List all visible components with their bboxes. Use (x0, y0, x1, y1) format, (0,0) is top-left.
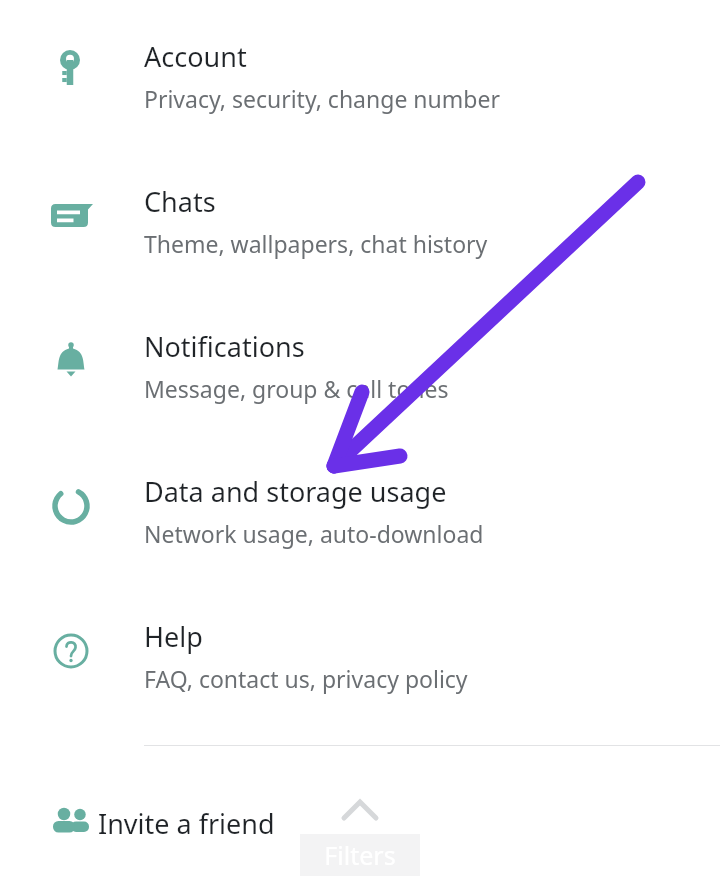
button[interactable]: Chats (0, 177, 720, 287)
staticText: Account (144, 38, 247, 75)
staticText: Chats (144, 183, 216, 220)
staticText: Message, group & call tones (144, 373, 449, 404)
button[interactable]: Notifications (0, 322, 720, 432)
staticText: Data and storage usage (144, 473, 447, 510)
staticText: Privacy, security, change number (144, 83, 500, 114)
staticText: Notifications (144, 328, 305, 365)
button[interactable]: Collapse (340, 788, 380, 828)
staticText: Invite a friend (98, 805, 275, 842)
button[interactable]: Account (0, 32, 720, 142)
staticText: Network usage, auto-download (144, 518, 484, 549)
button[interactable]: Help (0, 612, 720, 722)
button[interactable]: Invite a friend (0, 792, 720, 854)
staticText: Filters (324, 838, 396, 872)
staticText: Help (144, 618, 203, 655)
staticText: Theme, wallpapers, chat history (144, 228, 488, 259)
button[interactable]: Data and storage usage (0, 467, 720, 577)
button[interactable]: Filters (300, 834, 420, 876)
staticText: FAQ, contact us, privacy policy (144, 663, 468, 694)
